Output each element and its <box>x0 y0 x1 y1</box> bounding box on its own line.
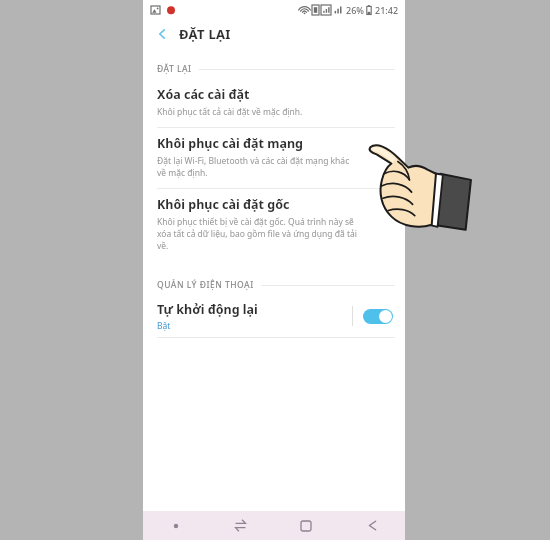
staticText: 26% <box>346 4 364 16</box>
staticText: Đặt lại Wi-Fi, Bluetooth và các cài đặt … <box>157 155 350 167</box>
button[interactable]: Recents <box>208 511 273 540</box>
staticText: về. <box>157 240 169 252</box>
button[interactable]: Back <box>152 24 172 44</box>
staticText: ĐẶT LẠI <box>157 63 192 75</box>
button[interactable]: Khôi phục cài đặt mạng <box>143 128 405 188</box>
staticText: QUẢN LÝ ĐIỆN THOẠI <box>157 279 254 291</box>
staticText: Tự khởi động lại <box>157 301 258 318</box>
button[interactable]: Xóa các cài đặt <box>143 79 405 127</box>
staticText: Bật <box>157 320 171 332</box>
staticText: Xóa các cài đặt <box>157 86 250 103</box>
button[interactable]: Khôi phục cài đặt gốc <box>143 189 405 261</box>
button[interactable]: Tự khởi động lại <box>143 295 405 337</box>
staticText: 21:42 <box>375 4 399 16</box>
staticText: Khôi phục cài đặt gốc <box>157 196 290 213</box>
staticText: về mặc định. <box>157 167 208 179</box>
button[interactable]: Home <box>273 511 339 540</box>
staticText: Khôi phục thiết bị về cài đặt gốc. Quá t… <box>157 216 354 228</box>
button[interactable]: Auto restart toggle <box>363 309 393 324</box>
staticText: Khôi phục cài đặt mạng <box>157 135 303 152</box>
button[interactable]: Back <box>339 511 405 540</box>
staticText: ĐẶT LẠI <box>179 25 231 43</box>
staticText: Khôi phục tất cả cài đặt về mặc định. <box>157 106 303 118</box>
staticText: xóa tất cả dữ liệu, bao gồm file và ứng … <box>157 228 358 240</box>
button[interactable]: Menu <box>143 511 208 540</box>
